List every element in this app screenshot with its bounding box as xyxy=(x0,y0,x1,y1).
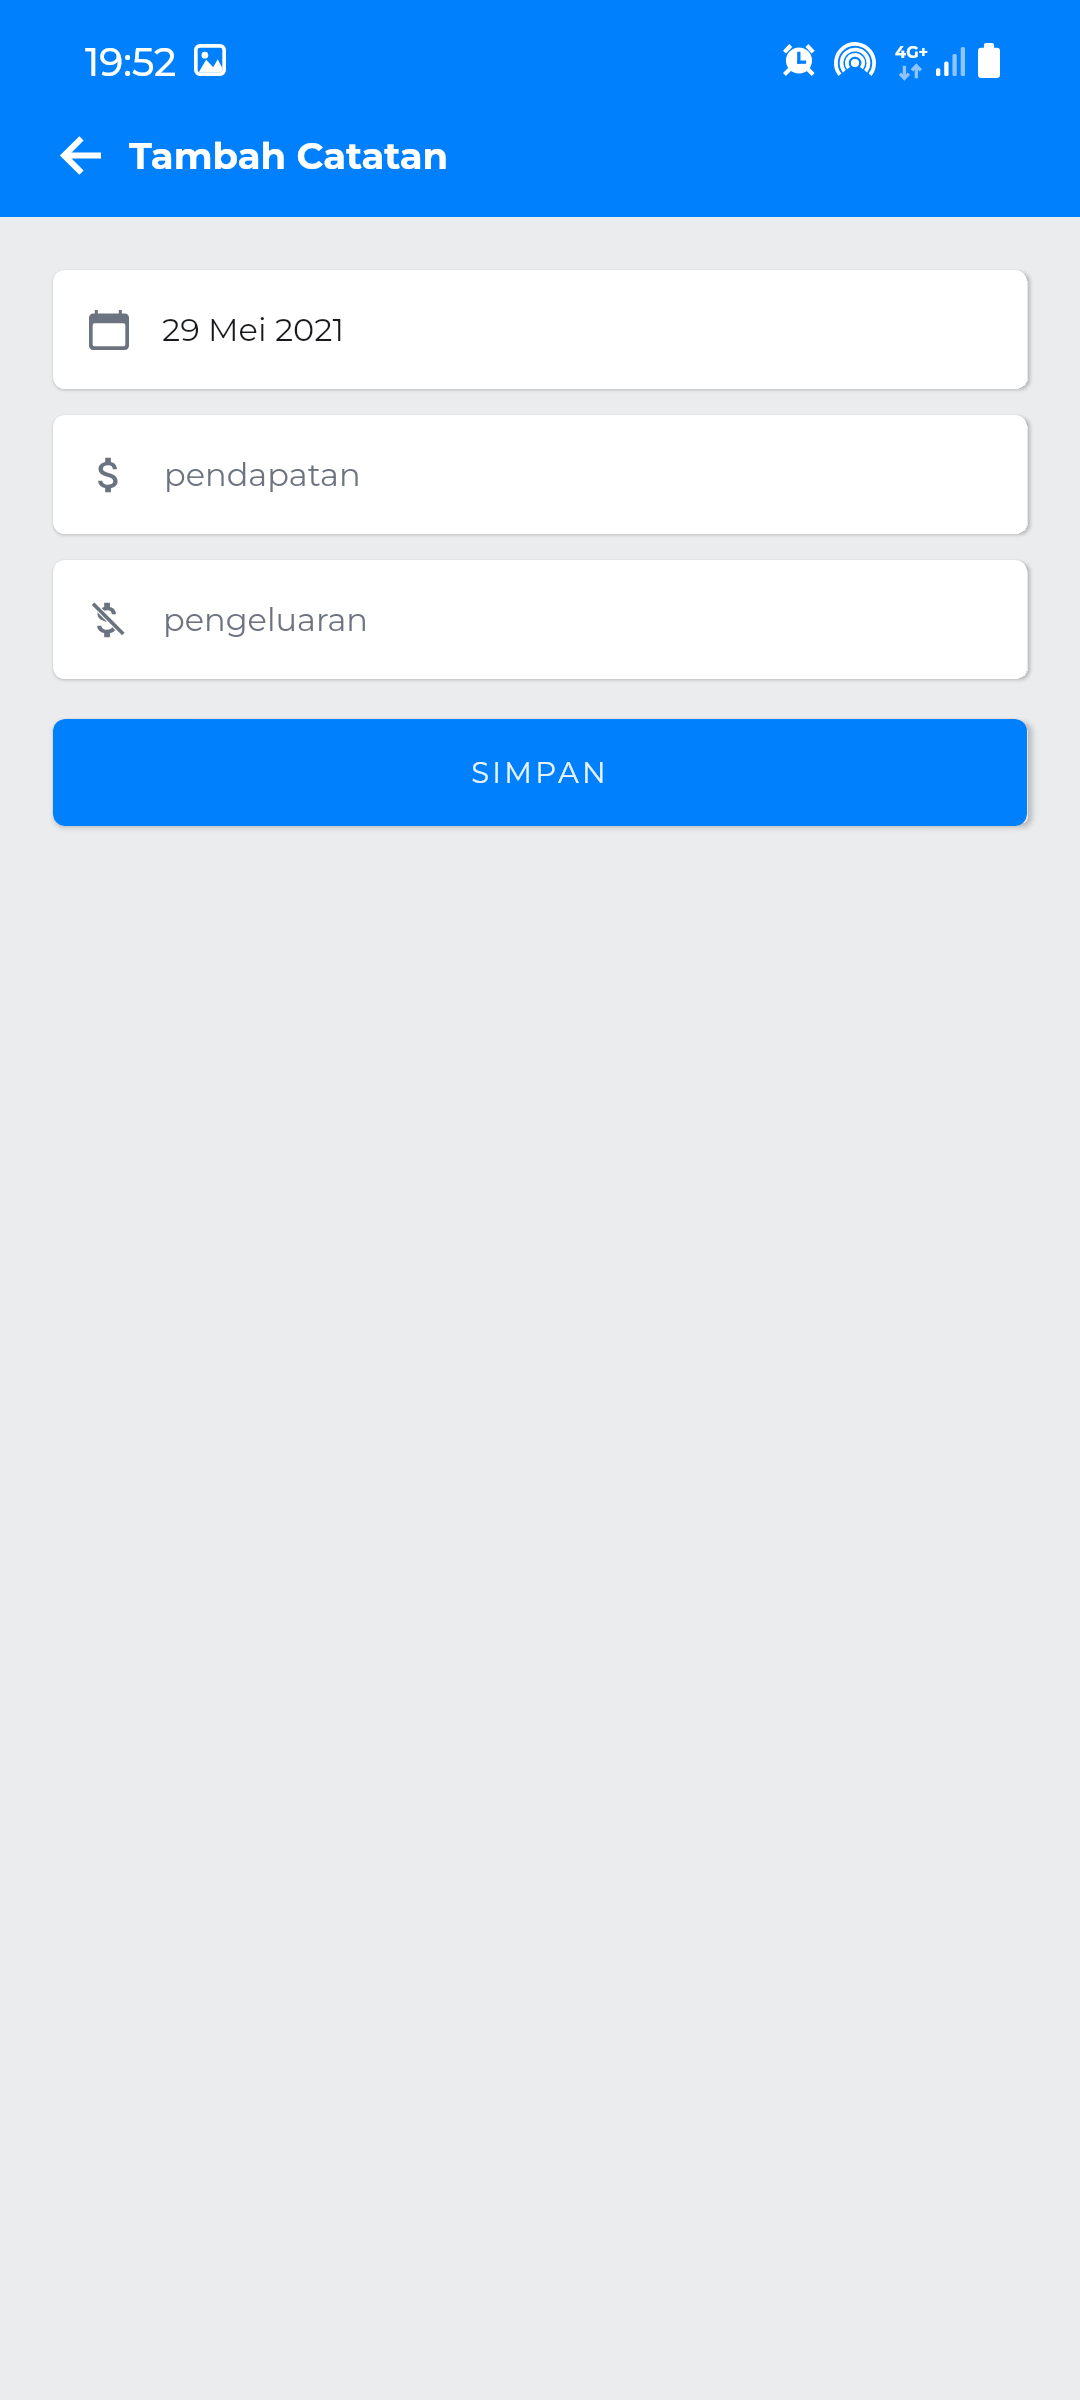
staticText: SIMPAN xyxy=(471,755,609,790)
staticText: 4G+ xyxy=(895,43,929,63)
staticText: pendapatan xyxy=(164,455,361,494)
button[interactable]: pendapatan xyxy=(53,415,1027,534)
staticText: Tambah Catatan xyxy=(129,133,449,178)
button[interactable]: Pilih tanggal xyxy=(53,270,1027,389)
staticText: pengeluaran xyxy=(163,600,368,639)
staticText: 19:52 xyxy=(85,38,177,86)
button[interactable]: pengeluaran xyxy=(53,560,1027,679)
button[interactable]: SIMPAN xyxy=(53,719,1027,826)
button[interactable]: Back xyxy=(37,111,125,199)
staticText: 29 Mei 2021 xyxy=(162,310,344,349)
